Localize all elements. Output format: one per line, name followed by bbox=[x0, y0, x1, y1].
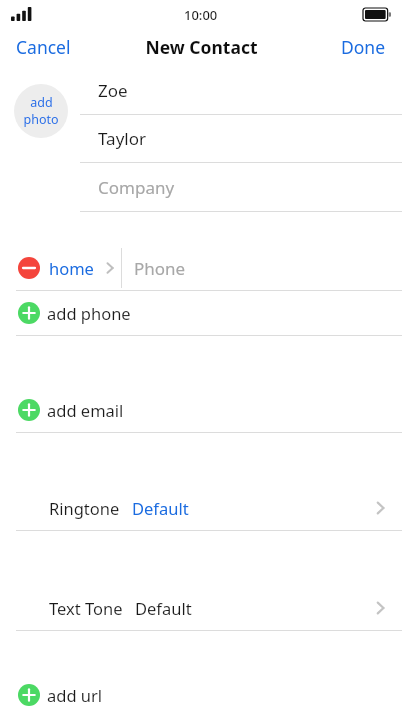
staticText: Company bbox=[98, 176, 175, 199]
staticText: Ringtone bbox=[49, 497, 120, 519]
staticText: New Contact bbox=[145, 35, 258, 59]
button[interactable]: Taylor bbox=[0, 115, 402, 162]
staticText: Text Tone bbox=[49, 597, 123, 619]
staticText: Default bbox=[132, 497, 189, 519]
staticText: add email bbox=[47, 399, 124, 421]
button[interactable]: Remove phone bbox=[0, 257, 121, 279]
other: Remove phone bbox=[18, 257, 40, 279]
staticText: photo bbox=[23, 111, 59, 128]
button[interactable]: Text Tone bbox=[0, 586, 402, 630]
staticText: Phone bbox=[134, 257, 186, 280]
staticText: add url bbox=[47, 684, 103, 706]
button[interactable]: Done bbox=[325, 29, 402, 65]
button[interactable]: add email bbox=[0, 388, 402, 432]
staticText: home bbox=[49, 257, 94, 279]
staticText: add phone bbox=[47, 302, 131, 324]
staticText: Cancel bbox=[16, 35, 71, 59]
button[interactable]: Ringtone bbox=[0, 486, 402, 530]
button[interactable]: Zoe bbox=[0, 66, 402, 114]
button[interactable]: add url bbox=[0, 675, 402, 715]
staticText: 10:00 bbox=[184, 6, 218, 24]
button[interactable]: Cancel bbox=[0, 29, 87, 65]
button[interactable]: Company bbox=[0, 163, 402, 211]
staticText: Done bbox=[341, 35, 386, 59]
staticText: Default bbox=[135, 597, 192, 619]
staticText: Taylor bbox=[98, 127, 146, 150]
button[interactable]: add phone bbox=[0, 291, 402, 335]
staticText: Zoe bbox=[98, 79, 128, 102]
button[interactable]: Add photo bbox=[14, 84, 68, 138]
staticText: add bbox=[30, 94, 53, 111]
